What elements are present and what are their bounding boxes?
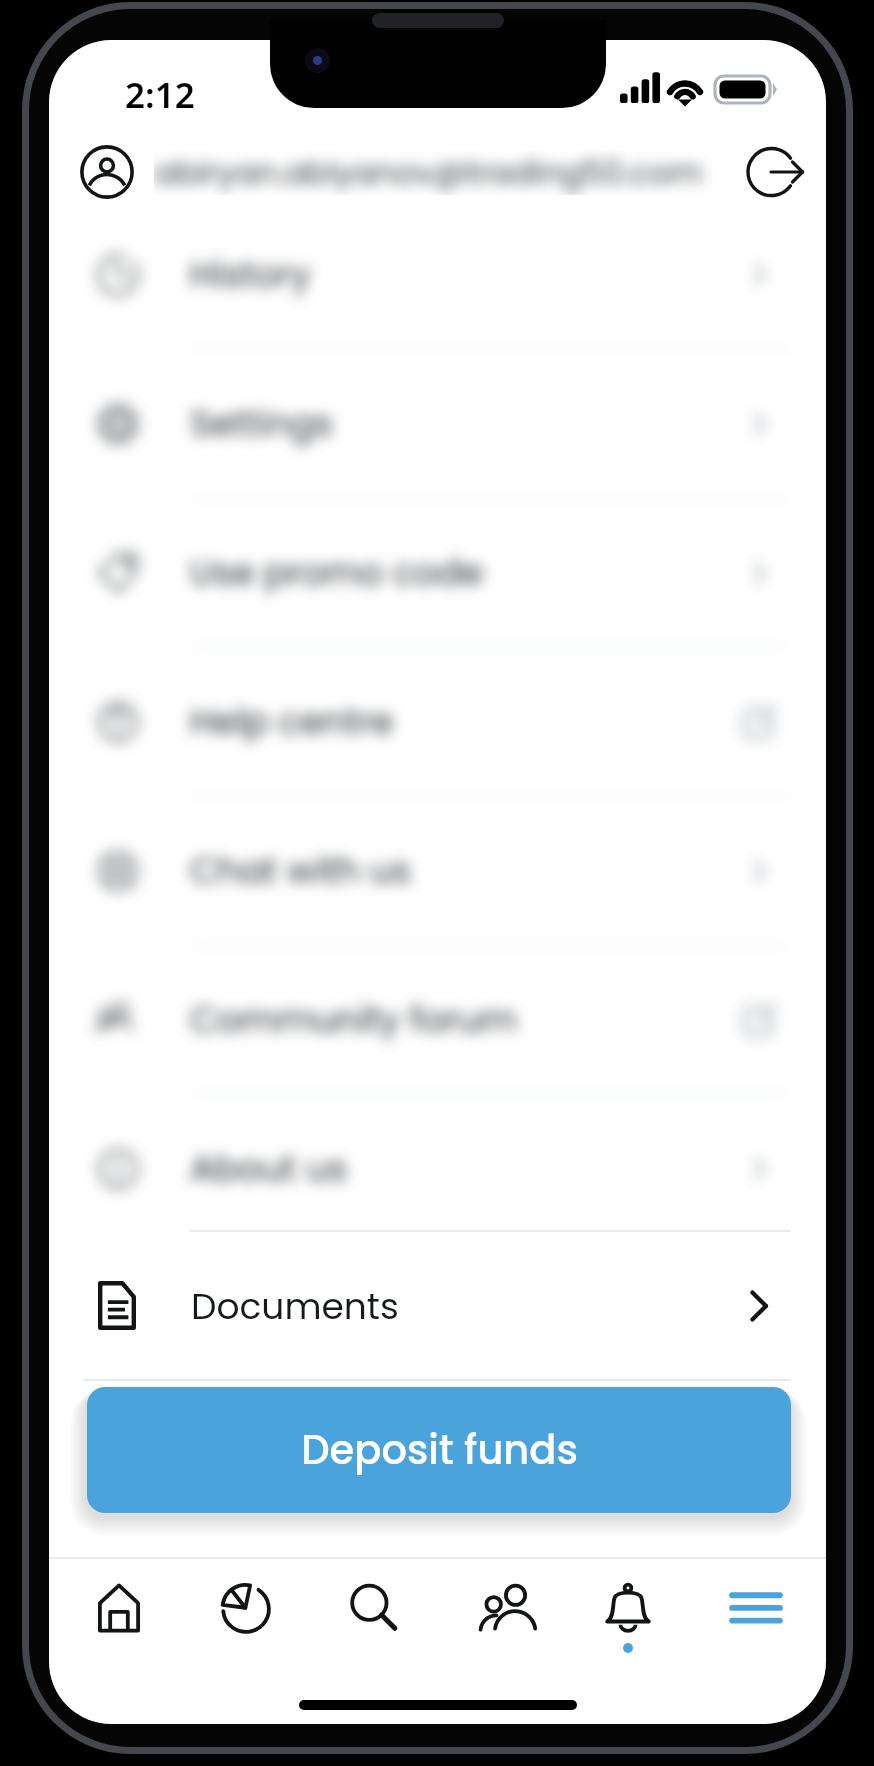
button[interactable]: Help centre xyxy=(49,648,826,795)
button[interactable]: Notifications xyxy=(566,1558,690,1658)
staticText: About us xyxy=(190,1144,743,1194)
button[interactable]: Log out xyxy=(748,143,806,201)
staticText: Community forum xyxy=(190,995,743,1045)
staticText: abiryan.abiyanov@trading50.com xyxy=(154,150,703,195)
other: Account xyxy=(80,145,134,199)
staticText: Documents xyxy=(191,1281,740,1331)
staticText: Deposit funds xyxy=(301,1422,578,1478)
staticText: 2:12 xyxy=(125,71,195,119)
button[interactable]: Contacts xyxy=(446,1558,570,1658)
button[interactable]: Home xyxy=(57,1558,181,1658)
staticText: Help centre xyxy=(190,697,743,747)
button[interactable]: Documents xyxy=(49,1232,826,1379)
button[interactable]: Portfolio xyxy=(184,1558,308,1658)
button[interactable]: Settings xyxy=(49,350,826,497)
button[interactable]: Use promo code xyxy=(49,499,826,646)
staticText: Settings xyxy=(190,399,743,449)
staticText: History xyxy=(190,250,743,300)
button[interactable]: Menu xyxy=(694,1558,818,1658)
button[interactable]: Account xyxy=(49,142,826,202)
button[interactable]: History xyxy=(49,201,826,348)
staticText: Chat with us xyxy=(190,846,743,896)
button[interactable]: Deposit funds xyxy=(87,1387,791,1513)
button[interactable]: About us xyxy=(49,1095,826,1215)
button[interactable]: Chat with us xyxy=(49,797,826,944)
button[interactable]: Search xyxy=(311,1558,435,1658)
button[interactable]: Community forum xyxy=(49,946,826,1093)
staticText: Use promo code xyxy=(190,548,743,598)
